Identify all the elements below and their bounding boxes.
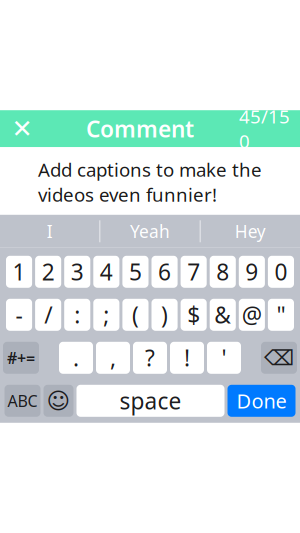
staticText: ) (161, 300, 168, 330)
staticText: ; (103, 300, 109, 330)
button[interactable]: Yeah (100, 215, 200, 248)
button[interactable]: I (0, 215, 99, 248)
staticText: Comment (86, 114, 194, 144)
staticText: Done (236, 387, 286, 414)
staticText: - (16, 300, 23, 330)
button[interactable]: ; (93, 299, 119, 331)
staticText: ? (145, 343, 155, 373)
button[interactable]: 9 (239, 256, 265, 288)
button[interactable]: & (210, 299, 236, 331)
staticText: space (119, 386, 181, 416)
staticText: #+= (7, 347, 35, 368)
staticText: 8 (216, 257, 229, 287)
staticText: Add captions to make the videos even fun… (38, 157, 262, 207)
staticText: 6 (158, 257, 171, 287)
button[interactable]: Done (227, 385, 295, 417)
staticText: ! (184, 343, 190, 373)
staticText: 0 (274, 257, 287, 287)
staticText: 5 (129, 257, 142, 287)
staticText: ( (132, 300, 139, 330)
staticText: I (47, 220, 53, 243)
button[interactable]: ' (207, 342, 241, 374)
button[interactable]: . (59, 342, 93, 374)
button[interactable]: 1 (6, 256, 32, 288)
button[interactable]: : (64, 299, 90, 331)
button[interactable]: 5 (122, 256, 148, 288)
button[interactable]: 8 (210, 256, 236, 288)
button[interactable]: #+= (3, 342, 39, 374)
button[interactable]: Hey (201, 215, 300, 248)
staticText: $ (187, 300, 200, 330)
staticText: ' (221, 343, 226, 373)
staticText: " (276, 300, 285, 330)
staticText: / (44, 300, 52, 330)
staticText: 2 (42, 257, 55, 287)
button[interactable]: Delete (261, 342, 297, 374)
button[interactable]: space (76, 385, 224, 417)
staticText: : (74, 300, 80, 330)
button[interactable]: " (268, 299, 294, 331)
staticText: Yeah (130, 220, 170, 243)
staticText: 7 (187, 257, 200, 287)
staticText: Hey (235, 220, 266, 243)
staticText: & (214, 300, 231, 330)
button[interactable]: 3 (64, 256, 90, 288)
staticText: 1 (13, 257, 26, 287)
button[interactable]: Emoji (43, 385, 73, 417)
button[interactable]: , (96, 342, 130, 374)
button[interactable]: ! (170, 342, 204, 374)
staticText: 4 (100, 257, 113, 287)
button[interactable]: 7 (181, 256, 207, 288)
button[interactable]: 0 (268, 256, 294, 288)
button[interactable]: / (35, 299, 61, 331)
staticText: 45/150 (239, 104, 290, 153)
staticText: ABC (7, 390, 37, 411)
button[interactable]: Close (0, 110, 44, 147)
button[interactable]: ABC (4, 385, 40, 417)
staticText: . (73, 343, 79, 373)
staticText: @ (242, 300, 262, 330)
button[interactable]: 6 (151, 256, 178, 288)
staticText: ✕ (11, 114, 32, 143)
button[interactable]: ( (122, 299, 148, 331)
staticText: , (110, 343, 116, 373)
button[interactable]: $ (181, 299, 207, 331)
button[interactable]: ) (151, 299, 178, 331)
staticText: ☺ (46, 388, 70, 414)
staticText: 9 (245, 257, 258, 287)
button[interactable]: ? (133, 342, 167, 374)
button[interactable]: - (6, 299, 32, 331)
staticText: ⌫ (264, 346, 294, 370)
button[interactable]: 2 (35, 256, 61, 288)
button[interactable]: 4 (93, 256, 119, 288)
staticText: 3 (71, 257, 84, 287)
button[interactable]: @ (239, 299, 265, 331)
